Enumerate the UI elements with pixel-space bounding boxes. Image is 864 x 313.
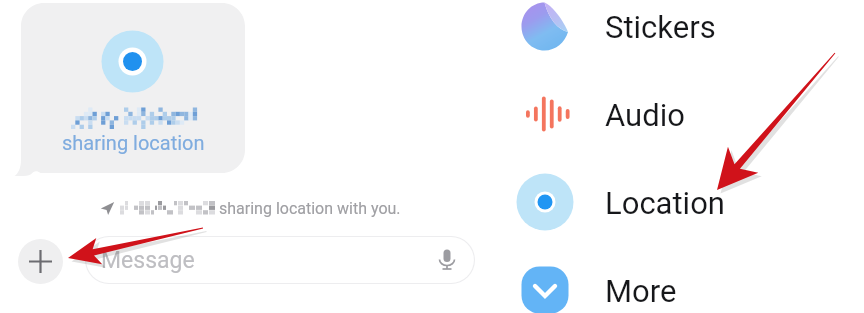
staticText: Audio bbox=[605, 97, 685, 133]
staticText: Stickers bbox=[605, 9, 716, 45]
staticText: More bbox=[605, 273, 677, 309]
button[interactable]: Message bbox=[85, 236, 475, 284]
button[interactable]: Voice input bbox=[435, 248, 459, 272]
button[interactable]: More bbox=[493, 261, 864, 313]
button[interactable]: Add attachment bbox=[18, 239, 63, 284]
staticText: Location bbox=[605, 185, 725, 221]
button[interactable]: Stickers bbox=[493, 0, 864, 55]
button[interactable]: Location bbox=[493, 173, 864, 231]
button[interactable]: sharing location bbox=[10, 3, 246, 181]
staticText: Message bbox=[101, 247, 195, 274]
button[interactable]: Audio bbox=[493, 85, 864, 143]
staticText: sharing location bbox=[62, 131, 205, 154]
staticText: sharing location with you. bbox=[219, 199, 401, 218]
